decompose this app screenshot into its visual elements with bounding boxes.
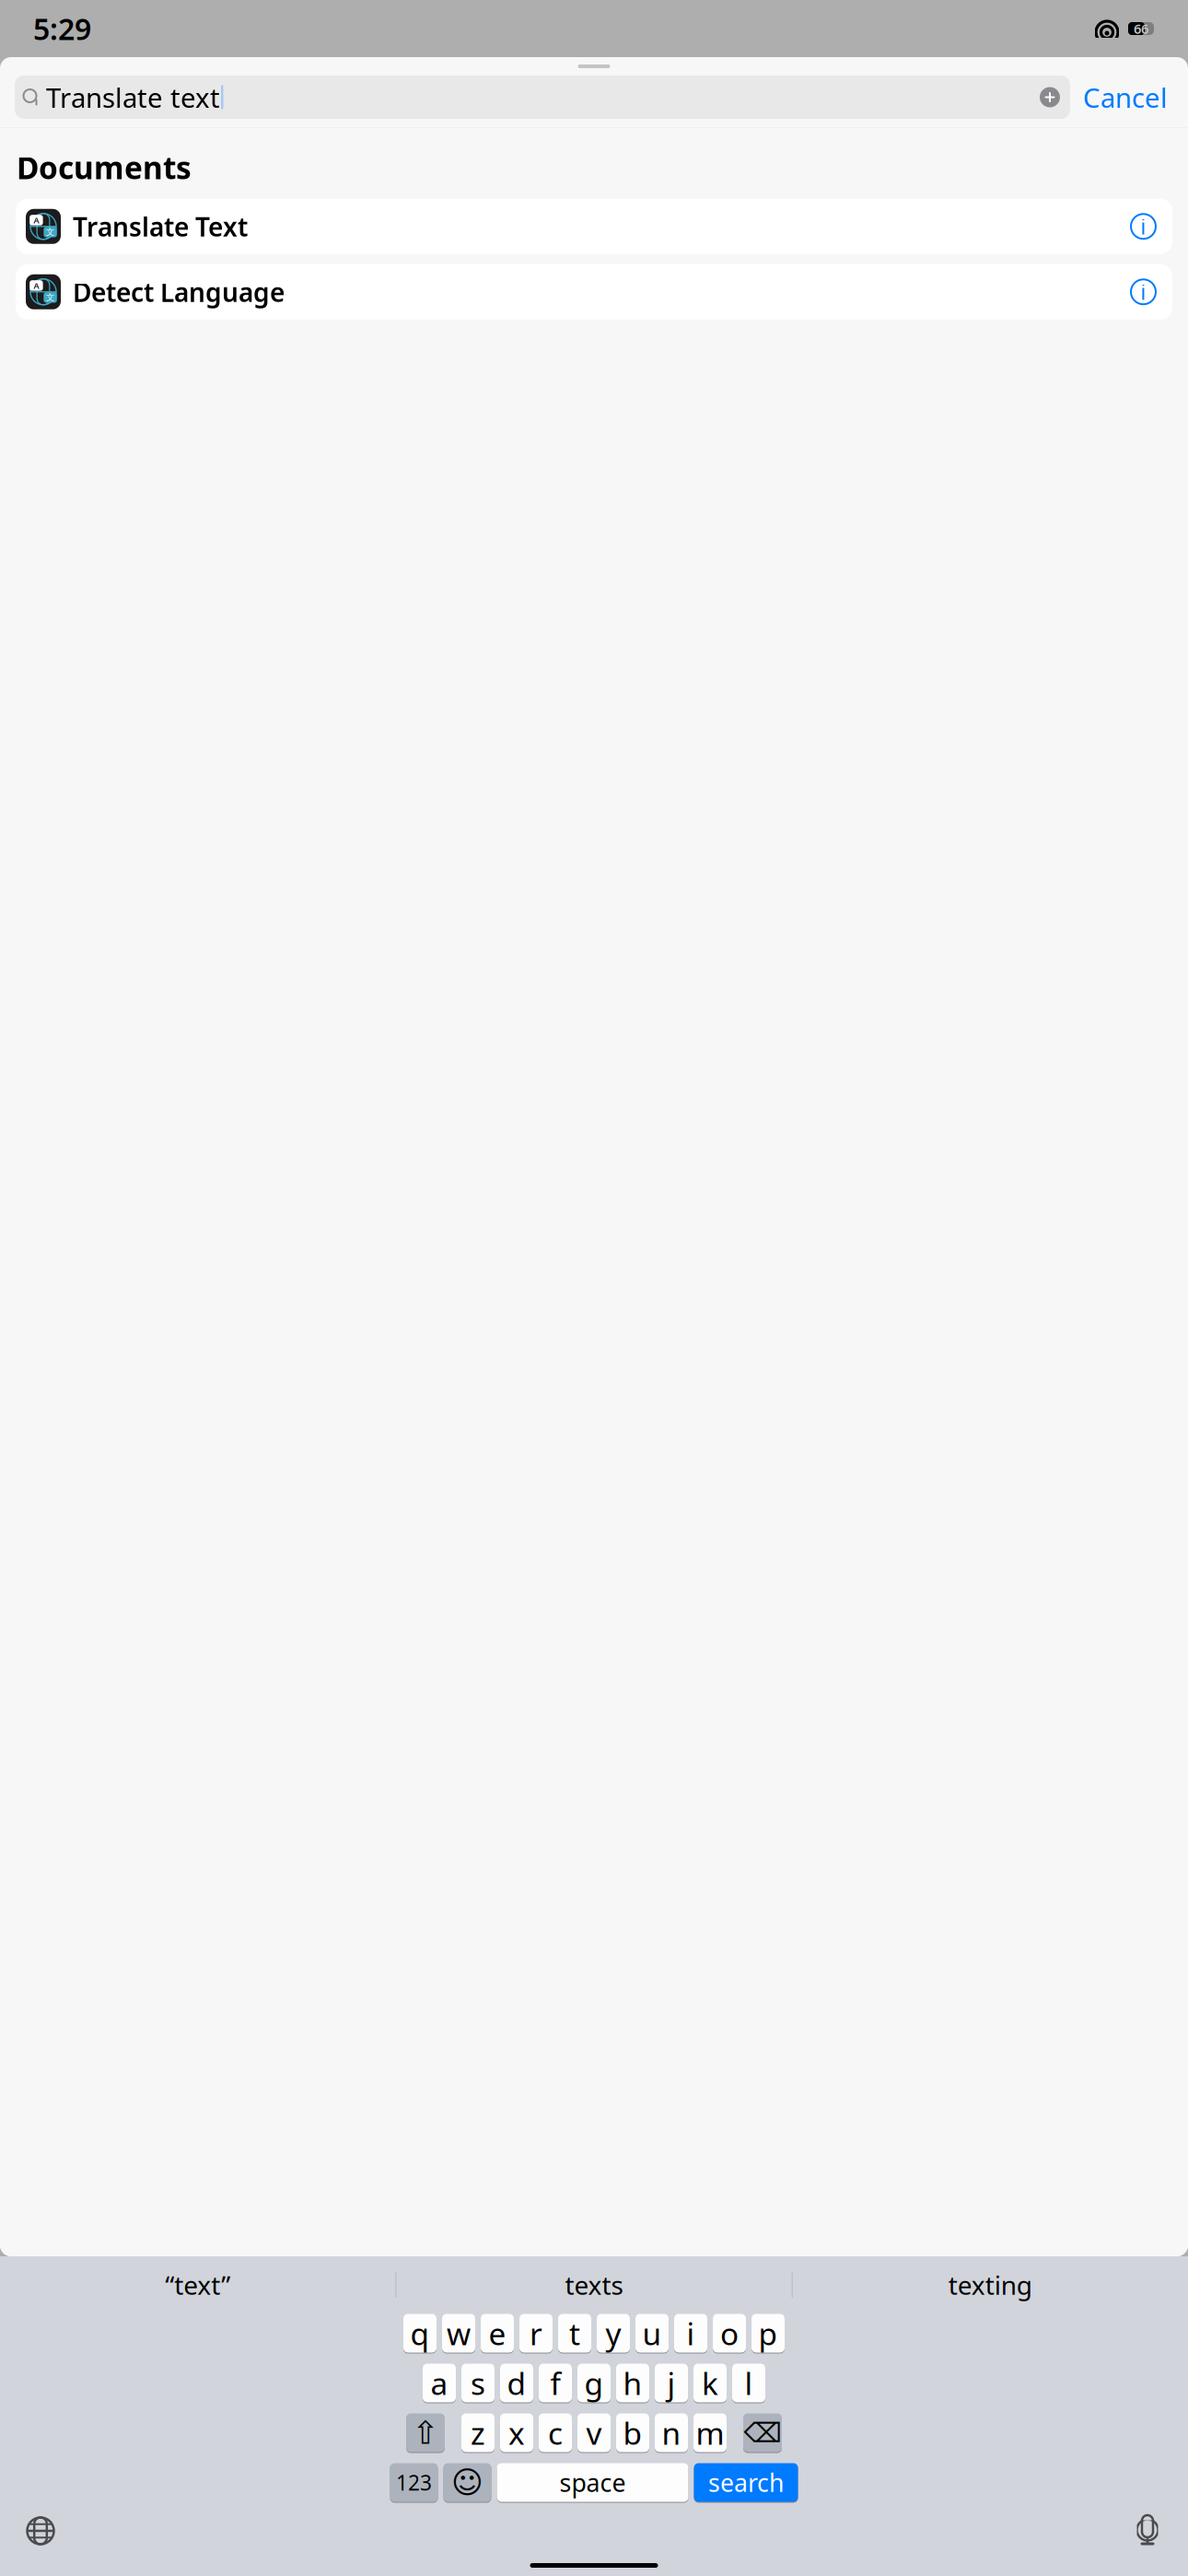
button[interactable]: texts xyxy=(396,2260,792,2310)
button[interactable]: v xyxy=(577,2413,611,2453)
staticText: i xyxy=(1141,278,1146,306)
staticText: x xyxy=(508,2412,525,2453)
button[interactable]: t xyxy=(558,2313,591,2353)
staticText: A xyxy=(34,214,39,226)
staticText: A xyxy=(34,280,39,291)
staticText: texting xyxy=(948,2268,1032,2302)
button[interactable]: h xyxy=(616,2363,649,2403)
staticText: w xyxy=(447,2313,471,2354)
button[interactable]: A xyxy=(16,199,1172,254)
staticText: g xyxy=(584,2363,604,2403)
staticText: j xyxy=(667,2363,676,2403)
button[interactable]: j xyxy=(655,2363,688,2403)
staticText: 5:29 xyxy=(33,9,91,48)
button[interactable]: texting xyxy=(793,2260,1188,2310)
button[interactable]: f xyxy=(539,2363,572,2403)
staticText: b xyxy=(623,2412,642,2453)
button[interactable]: search xyxy=(694,2463,798,2502)
staticText: Translate text xyxy=(46,79,220,115)
button[interactable]: c xyxy=(539,2413,572,2453)
button[interactable]: a xyxy=(423,2363,456,2403)
staticText: s xyxy=(471,2363,485,2403)
button[interactable]: Translate text xyxy=(15,76,1070,119)
staticText: k xyxy=(702,2363,718,2403)
button[interactable]: d xyxy=(500,2363,533,2403)
button[interactable]: “text” xyxy=(0,2260,395,2310)
button[interactable]: Cancel xyxy=(1070,76,1181,119)
button[interactable]: o xyxy=(713,2313,746,2353)
button[interactable]: s xyxy=(461,2363,495,2403)
staticText: 66 xyxy=(1134,20,1148,38)
staticText: i xyxy=(1141,213,1146,240)
staticText: v xyxy=(586,2412,602,2453)
button[interactable]: x xyxy=(500,2413,533,2453)
staticText: f xyxy=(550,2363,560,2403)
staticText: texts xyxy=(565,2268,623,2302)
button[interactable]: i xyxy=(674,2313,707,2353)
button[interactable]: q xyxy=(403,2313,437,2353)
staticText: c xyxy=(548,2412,563,2453)
staticText: r xyxy=(530,2313,542,2354)
staticText: “text” xyxy=(165,2268,230,2302)
button[interactable]: r xyxy=(519,2313,553,2353)
button[interactable]: w xyxy=(442,2313,475,2353)
staticText: h xyxy=(623,2363,642,2403)
button[interactable]: p xyxy=(751,2313,785,2353)
staticText: m xyxy=(696,2412,724,2453)
staticText: Translate Text xyxy=(73,209,248,244)
button[interactable]: u xyxy=(635,2313,669,2353)
button[interactable]: e xyxy=(481,2313,514,2353)
staticText: t xyxy=(569,2313,580,2354)
button[interactable]: k xyxy=(693,2363,727,2403)
button[interactable]: A xyxy=(16,264,1172,320)
staticText: ⇧ xyxy=(412,2415,439,2451)
button[interactable]: Shift xyxy=(406,2413,445,2453)
staticText: z xyxy=(471,2412,485,2453)
staticText: q xyxy=(410,2313,430,2354)
staticText: 文 xyxy=(46,227,54,237)
button[interactable]: 123 xyxy=(390,2463,438,2502)
staticText: Detect Language xyxy=(73,275,285,309)
button[interactable]: Dictate xyxy=(1124,2507,1171,2555)
button[interactable]: Next keyboard xyxy=(17,2507,64,2555)
button[interactable]: y xyxy=(597,2313,630,2353)
staticText: Documents xyxy=(17,147,192,188)
button[interactable]: Delete xyxy=(743,2413,782,2453)
staticText: u xyxy=(642,2313,662,2354)
button[interactable]: space xyxy=(497,2463,688,2502)
button[interactable]: m xyxy=(693,2413,727,2453)
button[interactable]: z xyxy=(461,2413,495,2453)
staticText: 文 xyxy=(46,292,54,303)
staticText: Cancel xyxy=(1083,79,1168,115)
staticText: e xyxy=(489,2313,506,2354)
staticText: n xyxy=(662,2412,681,2453)
staticText: space xyxy=(559,2466,626,2499)
button[interactable]: n xyxy=(655,2413,688,2453)
staticText: l xyxy=(745,2363,753,2403)
staticText: 123 xyxy=(396,2469,432,2496)
staticText: search xyxy=(708,2466,784,2499)
button[interactable]: l xyxy=(732,2363,765,2403)
staticText: p xyxy=(758,2313,778,2354)
staticText: y xyxy=(606,2313,621,2354)
staticText: d xyxy=(507,2363,526,2403)
button[interactable]: b xyxy=(616,2413,649,2453)
button[interactable]: g xyxy=(577,2363,611,2403)
staticText: a xyxy=(431,2363,448,2403)
staticText: ⌫ xyxy=(744,2417,781,2448)
staticText: i xyxy=(687,2313,695,2354)
staticText: o xyxy=(720,2313,739,2354)
staticText: ☺ xyxy=(451,2465,483,2500)
button[interactable]: Emoji xyxy=(443,2463,491,2502)
